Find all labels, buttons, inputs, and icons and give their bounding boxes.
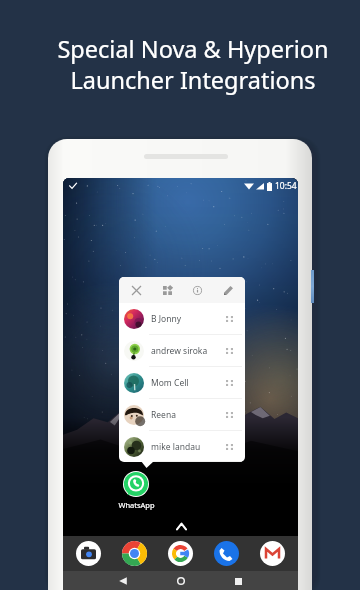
button[interactable]: mike landau (119, 431, 245, 462)
button[interactable]: Chrome (121, 540, 148, 567)
staticText: 10:54 (275, 180, 297, 192)
button[interactable]: Phone (213, 540, 240, 567)
staticText: mike landau (151, 441, 201, 453)
button[interactable]: Mom Cell (119, 367, 245, 399)
button[interactable]: Gmail (259, 540, 286, 567)
button[interactable]: andrew siroka (119, 335, 245, 367)
staticText: Mom Cell (151, 377, 189, 389)
button[interactable]: Reena (119, 399, 245, 431)
button[interactable]: Back (115, 573, 131, 589)
button[interactable]: Google (167, 540, 194, 567)
button[interactable]: Camera (75, 540, 102, 567)
button[interactable]: Home (173, 573, 189, 589)
staticText: B Jonny (151, 313, 182, 325)
button[interactable]: B Jonny (119, 303, 245, 335)
button[interactable]: Edit (215, 277, 241, 303)
staticText: andrew siroka (151, 345, 208, 357)
button[interactable]: Recents (230, 573, 246, 589)
button[interactable]: Close (123, 277, 149, 303)
button[interactable]: WhatsApp (114, 471, 158, 510)
button[interactable]: Widgets (154, 277, 180, 303)
button[interactable]: Info (184, 277, 210, 303)
staticText: Special Nova & Hyperion Launcher Integra… (57, 33, 329, 96)
staticText: Reena (151, 409, 176, 421)
staticText: WhatsApp (118, 500, 155, 510)
